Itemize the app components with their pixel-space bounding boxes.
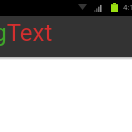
staticText: 4:10: [123, 3, 132, 12]
other: Network: [78, 4, 87, 10]
other: Battery: [111, 3, 118, 12]
staticText: ScrollingText: [0, 19, 53, 47]
other: Signal: [94, 5, 102, 12]
button[interactable]: ScrollingText: [0, 16, 132, 57]
